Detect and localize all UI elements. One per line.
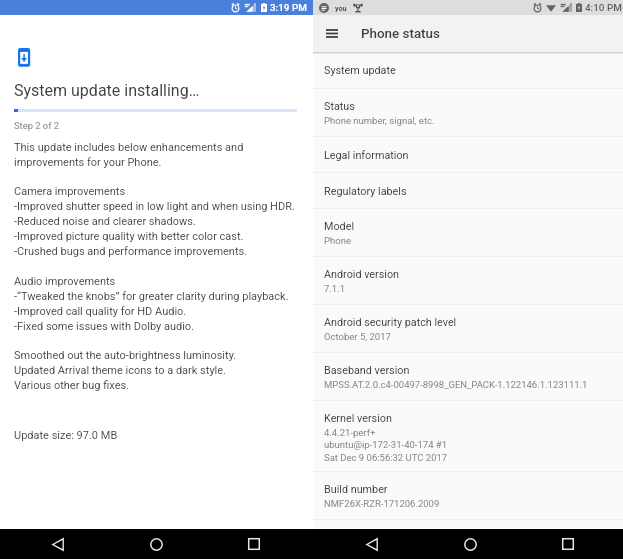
staticText: 4:10 PM	[585, 2, 622, 14]
staticText: improvements for your Phone.	[14, 156, 162, 169]
button[interactable]: Recent apps	[234, 529, 274, 559]
button[interactable]: Android security patch level	[313, 305, 623, 352]
staticText: -Improved call quality for HD Audio.	[14, 305, 187, 318]
staticText: Update size: 97.0 MB	[14, 429, 118, 442]
staticText: you	[335, 4, 347, 12]
button[interactable]: Legal information	[313, 137, 623, 172]
staticText: -Fixed some issues with Dolby audio.	[14, 320, 195, 333]
staticText: -Reduced noise and clearer shadows.	[14, 215, 196, 228]
staticText: Step 2 of 2	[14, 120, 60, 131]
button[interactable]: Open navigation menu	[313, 15, 350, 52]
button[interactable]: Kernel version	[313, 401, 623, 471]
staticText: Updated Arrival theme icons to a dark st…	[14, 364, 226, 377]
staticText: Kernel version	[324, 412, 392, 425]
staticText: Phone status	[361, 26, 440, 42]
staticText: -Improved shutter speed in low light and…	[14, 200, 295, 213]
staticText: Camera improvements	[14, 185, 126, 198]
staticText: NMF26X-RZR-171206.2009	[324, 498, 440, 509]
button[interactable]: Build number	[313, 472, 623, 519]
staticText: October 5, 2017	[324, 331, 391, 342]
button[interactable]: Back	[38, 529, 78, 559]
button[interactable]: Back	[352, 529, 392, 559]
button[interactable]: System update	[313, 54, 623, 88]
staticText: Baseband version	[324, 364, 410, 377]
staticText: 7.1.1	[324, 283, 346, 294]
staticText: -Improved picture quality with better co…	[14, 230, 244, 243]
button[interactable]: Regulatory labels	[313, 173, 623, 208]
staticText: System update installing…	[14, 81, 200, 100]
staticText: Various other bug fixes.	[14, 379, 130, 392]
staticText: Phone number, signal, etc.	[324, 115, 435, 126]
staticText: System update	[324, 64, 396, 77]
button[interactable]: Recent apps	[548, 529, 588, 559]
staticText: Smoothed out the auto-brightness luminos…	[14, 349, 237, 362]
staticText: Regulatory labels	[324, 185, 407, 198]
staticText: Model	[324, 220, 355, 233]
staticText: Android version	[324, 268, 400, 281]
staticText: Legal information	[324, 149, 409, 162]
staticText: Audio improvements	[14, 275, 116, 288]
button[interactable]: Status	[313, 89, 623, 136]
staticText: 4.4.21-perf+ ubuntu@ip-172-31-40-174 #1 …	[324, 427, 448, 463]
staticText: -Crushed bugs and performance improvemen…	[14, 245, 248, 258]
button[interactable]: Baseband version	[313, 353, 623, 400]
staticText: 3:19 PM	[270, 2, 307, 14]
staticText: Android security patch level	[324, 316, 457, 329]
staticText: -“Tweaked the knobs” for greater clarity…	[14, 290, 289, 303]
button[interactable]: Home	[136, 529, 176, 559]
staticText: Build number	[324, 483, 388, 496]
staticText: This update includes below enhancements …	[14, 141, 244, 154]
staticText: Status	[324, 100, 355, 113]
staticText: MPSS.AT.2.0.c4-00497-8998_GEN_PACK-1.122…	[324, 379, 588, 390]
button[interactable]: Home	[450, 529, 490, 559]
button[interactable]: Model	[313, 209, 623, 256]
button[interactable]: Android version	[313, 257, 623, 304]
staticText: Phone	[324, 235, 351, 246]
